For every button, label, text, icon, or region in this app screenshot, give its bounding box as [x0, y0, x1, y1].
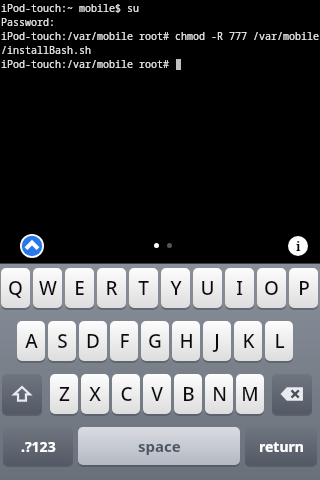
button[interactable]: S: [48, 321, 76, 363]
staticText: D: [86, 328, 100, 354]
staticText: space: [138, 436, 181, 456]
button[interactable]: D: [79, 321, 107, 363]
button[interactable]: M: [236, 374, 264, 416]
staticText: A: [25, 328, 38, 354]
button[interactable]: X: [81, 374, 109, 416]
button[interactable]: Q: [1, 268, 30, 310]
button[interactable]: V: [143, 374, 171, 416]
button[interactable]: A: [17, 321, 45, 363]
button[interactable]: L: [265, 321, 293, 363]
button[interactable]: space: [78, 427, 240, 467]
button[interactable]: W: [33, 268, 62, 310]
button[interactable]: B: [174, 374, 202, 416]
staticText: V: [151, 381, 163, 407]
staticText: T: [138, 275, 149, 301]
staticText: G: [148, 328, 162, 354]
button[interactable]: H: [172, 321, 200, 363]
staticText: Password:: [1, 15, 55, 29]
staticText: S: [57, 328, 68, 354]
staticText: F: [119, 328, 130, 354]
button[interactable]: E: [65, 268, 94, 310]
staticText: J: [214, 328, 220, 354]
button[interactable]: T: [129, 268, 158, 310]
staticText: .?123: [21, 437, 56, 456]
button[interactable]: return: [245, 427, 317, 467]
button[interactable]: C: [112, 374, 140, 416]
staticText: Y: [170, 275, 182, 301]
staticText: Z: [59, 381, 70, 407]
button[interactable]: Info: [288, 236, 308, 256]
staticText: return: [259, 437, 304, 456]
button[interactable]: I: [225, 268, 254, 310]
button[interactable]: G: [141, 321, 169, 363]
button[interactable]: Y: [161, 268, 190, 310]
staticText: I: [236, 275, 243, 301]
button[interactable]: F: [110, 321, 138, 363]
staticText: M: [241, 381, 259, 407]
staticText: iPod-touch:/var/mobile root# chmod -R 77…: [1, 29, 319, 43]
staticText: P: [298, 275, 310, 301]
staticText: i: [296, 237, 301, 255]
button[interactable]: U: [193, 268, 222, 310]
button[interactable]: Shift: [2, 374, 42, 416]
button[interactable]: R: [97, 268, 126, 310]
staticText: R: [105, 275, 118, 301]
staticText: H: [179, 328, 194, 354]
button[interactable]: O: [257, 268, 286, 310]
button[interactable]: P: [289, 268, 318, 310]
staticText: W: [39, 275, 57, 301]
staticText: iPod-touch:/var/mobile root#: [1, 57, 175, 71]
staticText: /installBash.sh: [1, 43, 91, 57]
button[interactable]: Z: [50, 374, 78, 416]
staticText: C: [120, 381, 133, 407]
button[interactable]: N: [205, 374, 233, 416]
button[interactable]: K: [234, 321, 262, 363]
staticText: N: [212, 381, 227, 407]
staticText: iPod-touch:~ mobile$ su: [1, 1, 139, 15]
button[interactable]: Backspace: [272, 374, 312, 416]
staticText: O: [264, 275, 279, 301]
staticText: B: [182, 381, 195, 407]
button[interactable]: .?123: [3, 427, 73, 467]
staticText: Q: [8, 275, 23, 301]
staticText: U: [200, 275, 215, 301]
button[interactable]: J: [203, 321, 231, 363]
staticText: E: [74, 275, 85, 301]
button[interactable]: Scroll up: [20, 234, 44, 258]
staticText: K: [242, 328, 255, 354]
staticText: L: [274, 328, 285, 354]
staticText: X: [89, 381, 101, 407]
